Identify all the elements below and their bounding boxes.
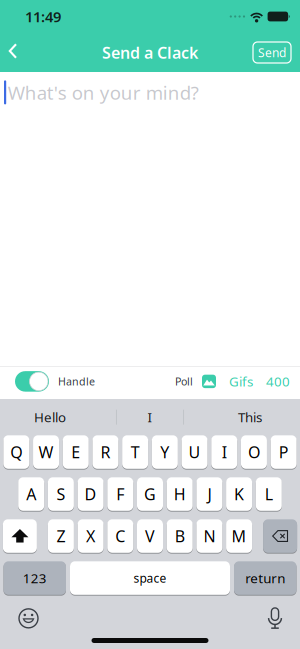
staticText: S: [56, 483, 65, 505]
staticText: H: [174, 483, 186, 505]
staticText: C: [115, 525, 125, 547]
staticText: return: [245, 569, 285, 587]
button[interactable]: C: [107, 519, 133, 554]
button[interactable]: Delete: [263, 519, 297, 554]
button[interactable]: Y: [152, 435, 178, 470]
staticText: Y: [160, 441, 169, 463]
button[interactable]: Back: [0, 34, 17, 71]
staticText: Hello: [34, 408, 66, 426]
staticText: L: [265, 483, 273, 505]
staticText: X: [86, 525, 95, 547]
staticText: V: [145, 525, 155, 547]
staticText: P: [279, 441, 289, 463]
button[interactable]: X: [78, 519, 104, 554]
button[interactable]: Emoji: [0, 609, 38, 628]
staticText: A: [26, 483, 36, 505]
staticText: M: [232, 525, 247, 547]
staticText: 11:49: [25, 7, 61, 26]
staticText: What's on your mind?: [8, 80, 199, 105]
staticText: J: [207, 483, 211, 505]
staticText: G: [144, 483, 156, 505]
button[interactable]: Poll: [175, 374, 193, 388]
button[interactable]: W: [33, 435, 59, 470]
staticText: Send a Clack: [102, 42, 198, 63]
button[interactable]: U: [181, 435, 207, 470]
button[interactable]: M: [226, 519, 252, 554]
staticText: W: [38, 441, 53, 463]
button[interactable]: Hello: [0, 399, 100, 435]
button[interactable]: return: [234, 561, 296, 596]
staticText: D: [85, 483, 97, 505]
button[interactable]: 123: [3, 561, 66, 596]
staticText: Handle: [58, 374, 95, 388]
staticText: 400: [266, 372, 290, 390]
button[interactable]: G: [137, 477, 163, 512]
staticText: B: [175, 525, 185, 547]
button[interactable]: V: [137, 519, 163, 554]
button[interactable]: Q: [3, 435, 29, 470]
button[interactable]: Dictate: [267, 608, 300, 629]
button[interactable]: Add photo: [193, 375, 216, 388]
button[interactable]: Z: [48, 519, 74, 554]
staticText: O: [248, 441, 260, 463]
button[interactable]: Gifs: [216, 372, 253, 390]
button[interactable]: H: [167, 477, 193, 512]
button[interactable]: A: [18, 477, 44, 512]
staticText: N: [203, 525, 215, 547]
button[interactable]: S: [48, 477, 74, 512]
staticText: I: [222, 441, 227, 463]
button[interactable]: This: [200, 399, 300, 435]
button[interactable]: I: [211, 435, 237, 470]
staticText: F: [116, 483, 124, 505]
staticText: 123: [23, 569, 47, 587]
button[interactable]: L: [256, 477, 282, 512]
button[interactable]: O: [241, 435, 267, 470]
button[interactable]: Shift: [3, 519, 37, 554]
staticText: R: [100, 441, 110, 463]
button[interactable]: P: [271, 435, 297, 470]
button[interactable]: K: [226, 477, 252, 512]
staticText: K: [234, 483, 244, 505]
staticText: space: [133, 570, 166, 586]
staticText: Z: [56, 525, 65, 547]
staticText: This: [238, 408, 262, 426]
staticText: Poll: [175, 374, 193, 388]
staticText: U: [188, 441, 200, 463]
button[interactable]: J: [196, 477, 222, 512]
button[interactable]: N: [196, 519, 222, 554]
staticText: T: [131, 441, 140, 463]
button[interactable]: Handle toggle: [0, 371, 49, 392]
staticText: Gifs: [229, 372, 253, 390]
button[interactable]: R: [92, 435, 118, 470]
button[interactable]: I: [100, 399, 200, 435]
staticText: Q: [10, 441, 22, 463]
button[interactable]: Send: [253, 42, 300, 63]
staticText: E: [71, 441, 80, 463]
staticText: I: [147, 408, 152, 426]
button[interactable]: space: [70, 561, 230, 596]
button[interactable]: E: [63, 435, 89, 470]
button[interactable]: B: [167, 519, 193, 554]
button[interactable]: F: [107, 477, 133, 512]
staticText: Send: [258, 44, 286, 60]
button[interactable]: D: [78, 477, 104, 512]
button[interactable]: T: [122, 435, 148, 470]
